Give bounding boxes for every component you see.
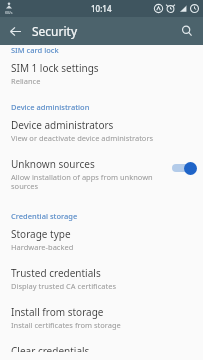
staticText: Credential storage	[11, 211, 203, 221]
button[interactable]: Trusted credentials	[0, 266, 203, 305]
staticText: View or deactivate device administrators	[11, 133, 154, 143]
button[interactable]: Search	[175, 19, 199, 43]
staticText: SIM 1 lock settings	[11, 61, 99, 75]
button[interactable]: Clear credentials	[0, 344, 203, 360]
staticText: Allow installation of apps from unknown …	[11, 172, 162, 191]
button[interactable]: Device administrators	[0, 112, 203, 157]
button[interactable]: Storage type	[0, 221, 203, 266]
button[interactable]: Unknown sources	[0, 157, 203, 201]
staticText: Security	[32, 23, 78, 39]
staticText: 10:14	[91, 3, 112, 14]
staticText: Hardware-backed	[11, 242, 74, 252]
button[interactable]: Unknown sources	[170, 161, 197, 175]
staticText: KB/s	[5, 10, 13, 15]
staticText: Device administrators	[11, 118, 114, 132]
button[interactable]: Install from storage	[0, 305, 203, 344]
staticText: Clear credentials	[11, 344, 90, 352]
button[interactable]: SIM 1 lock settings	[0, 54, 203, 99]
staticText: Storage type	[11, 227, 71, 241]
staticText: Install certificates from storage	[11, 320, 121, 330]
staticText: SIM card lock	[11, 45, 59, 54]
button[interactable]: SIM card lock	[0, 45, 203, 54]
staticText: Device administration	[11, 102, 203, 112]
staticText: Reliance	[11, 76, 41, 86]
staticText: Display trusted CA certificates	[11, 281, 116, 291]
staticText: Unknown sources	[11, 157, 95, 171]
button[interactable]: Back	[3, 19, 27, 43]
staticText: Trusted credentials	[11, 266, 101, 280]
staticText: Install from storage	[11, 305, 104, 319]
